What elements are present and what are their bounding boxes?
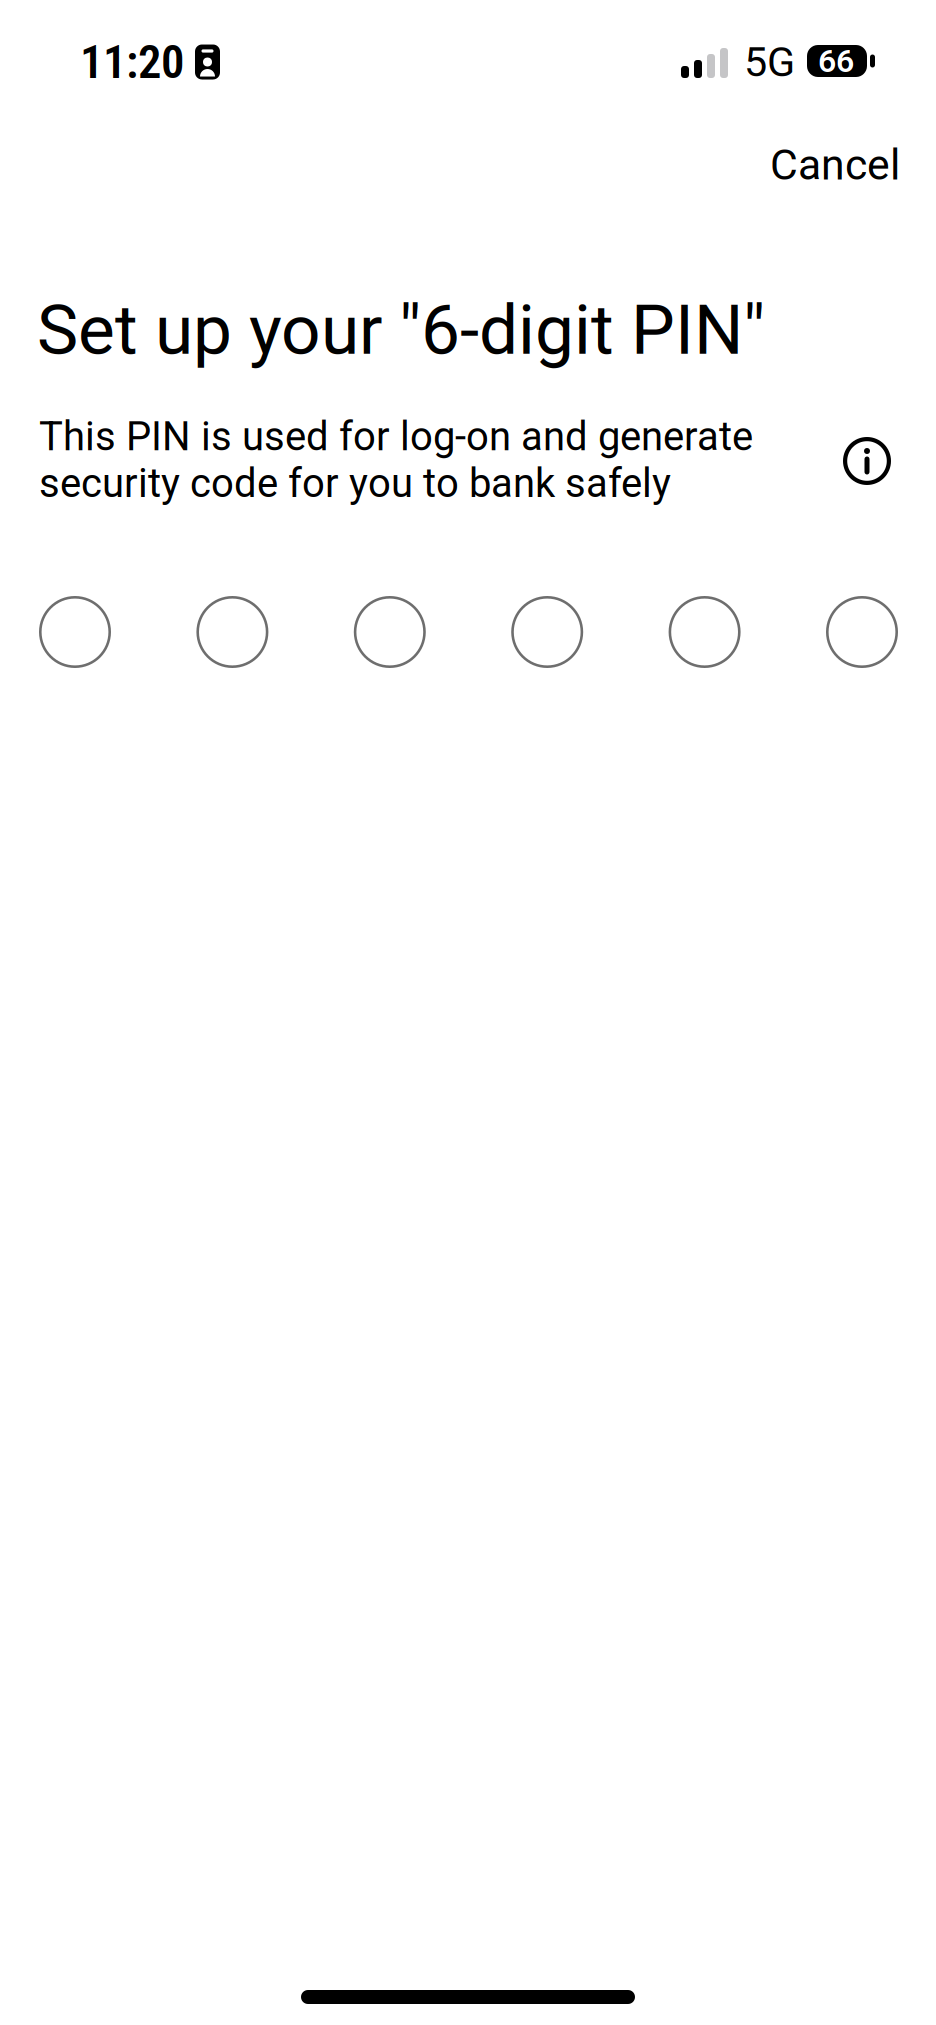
staticText: 5G: [744, 38, 795, 86]
staticText: Set up your "6-digit PIN": [37, 289, 765, 371]
button[interactable]: More information about the PIN: [827, 421, 907, 501]
staticText: 11:20: [80, 35, 184, 89]
staticText: This PIN is used for log-on and generate…: [39, 413, 753, 507]
staticText: Cancel: [770, 140, 900, 190]
staticText: 66: [818, 42, 854, 80]
button[interactable]: Cancel: [660, 117, 936, 213]
button[interactable]: Enter your 6-digit PIN: [39, 596, 898, 668]
